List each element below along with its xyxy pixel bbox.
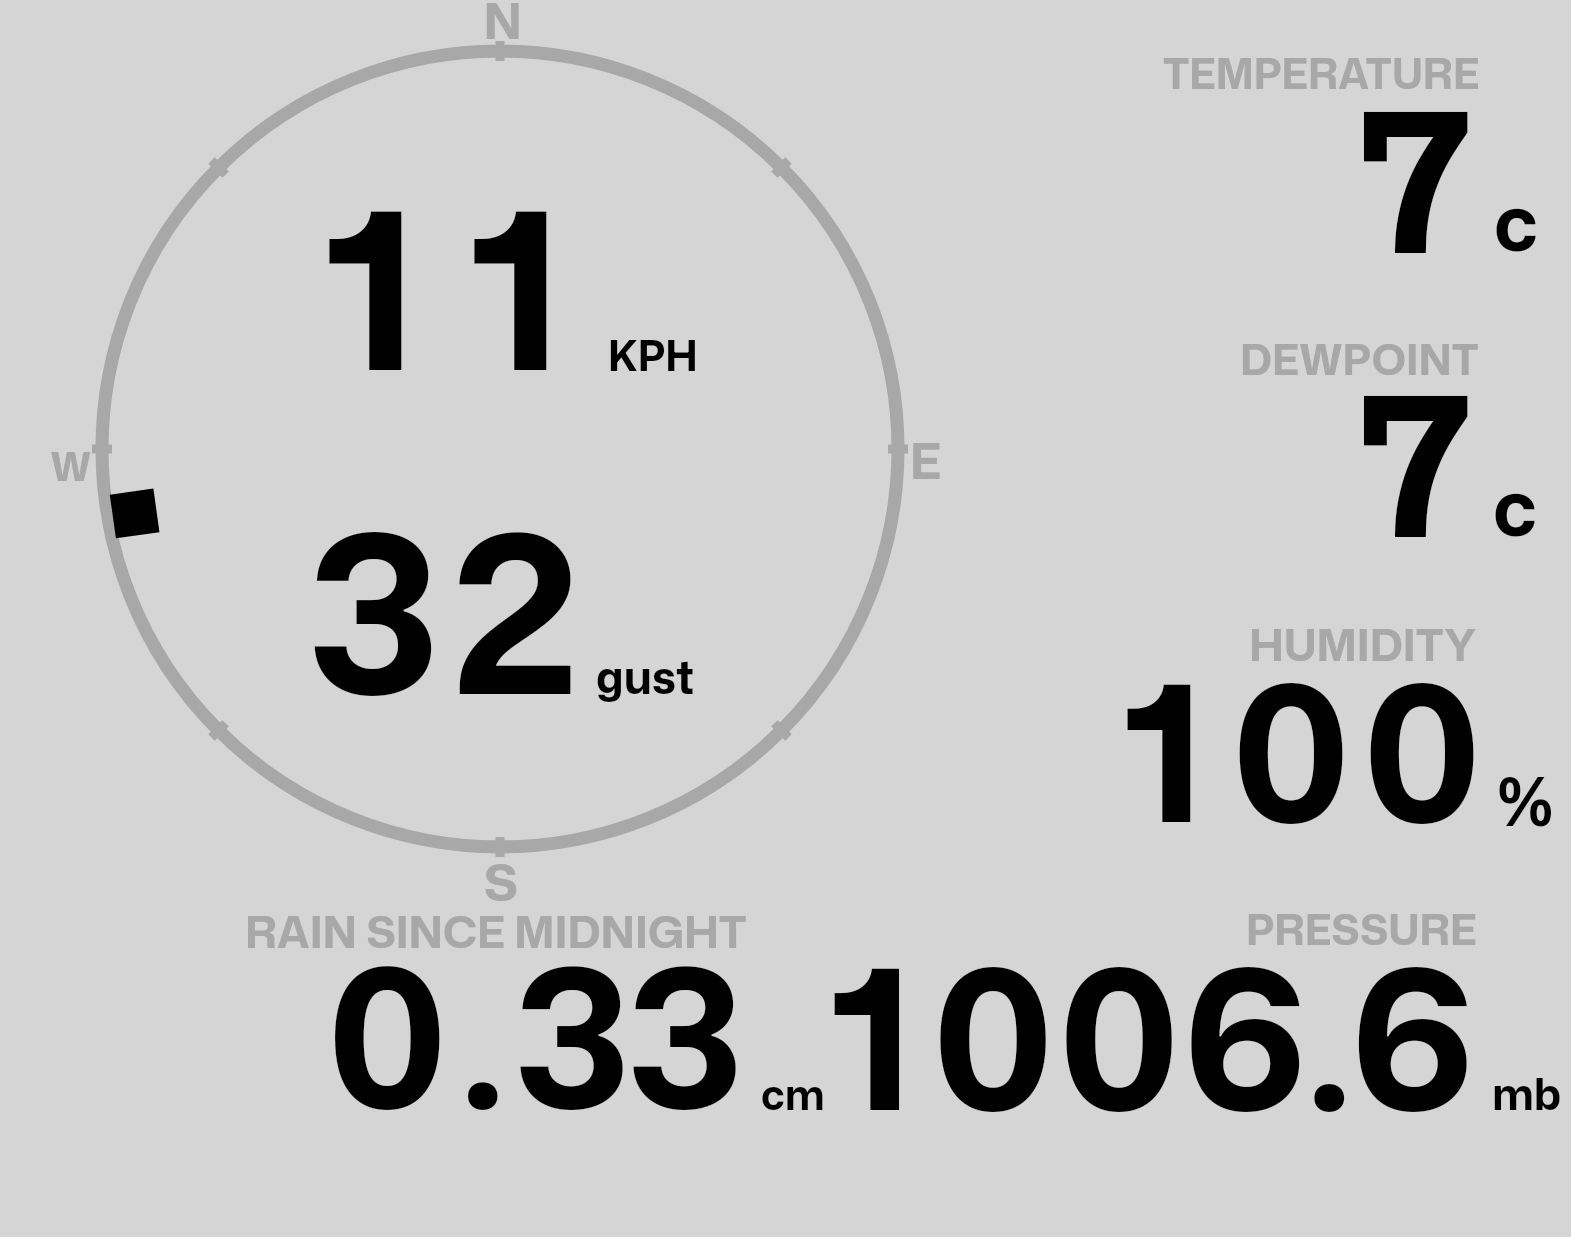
button[interactable]: Wind 11 KPH gusting 32, direction west s… — [70, 20, 950, 900]
button[interactable]: Temperature 7 degrees celsius — [1100, 40, 1571, 300]
button[interactable]: Humidity 100 percent — [1100, 610, 1571, 870]
button[interactable]: Rain since midnight 0.33 cm — [220, 895, 840, 1135]
button[interactable]: Dewpoint 7 degrees celsius — [1100, 325, 1571, 585]
button[interactable]: Pressure 1006.6 millibars — [1100, 895, 1571, 1135]
